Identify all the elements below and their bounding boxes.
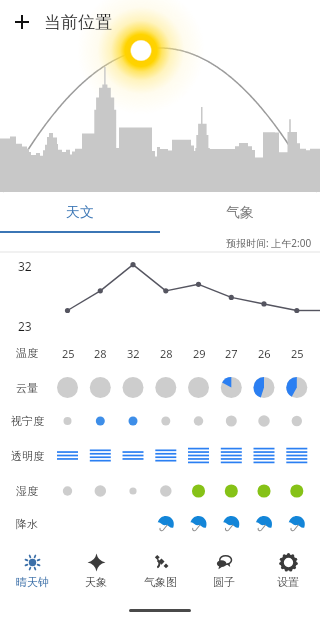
staticText: 当前位置 bbox=[44, 12, 112, 33]
staticText: 23 bbox=[18, 318, 32, 334]
staticText: 气象 bbox=[226, 204, 254, 222]
button[interactable]: 天文 bbox=[0, 193, 160, 233]
button[interactable]: 设置 bbox=[256, 541, 320, 600]
staticText: 不稳定度 bbox=[5, 550, 49, 560]
staticText: 28 bbox=[160, 346, 173, 361]
staticText: 晴天钟 bbox=[16, 575, 49, 589]
button[interactable]: 圆子 bbox=[192, 541, 256, 600]
staticText: 天象 bbox=[85, 575, 107, 589]
staticText: 透明度 bbox=[11, 449, 44, 463]
staticText: 29 bbox=[193, 346, 206, 361]
staticText: 云量 bbox=[16, 381, 38, 395]
staticText: 温度 bbox=[16, 346, 38, 360]
staticText: 32 bbox=[127, 346, 140, 361]
staticText: 27 bbox=[225, 346, 238, 361]
staticText: 气象图 bbox=[144, 575, 177, 589]
staticText: 预报时间: 上午2:00 bbox=[226, 236, 312, 250]
staticText: 32 bbox=[18, 258, 32, 274]
staticText: 28 bbox=[94, 346, 107, 361]
staticText: 25 bbox=[291, 346, 304, 361]
button[interactable]: 当前位置 bbox=[44, 0, 112, 44]
staticText: 圆子 bbox=[213, 575, 235, 589]
staticText: 25 bbox=[62, 346, 75, 361]
staticText: 天文 bbox=[66, 204, 94, 222]
staticText: 26 bbox=[258, 346, 271, 361]
button[interactable]: 晴天钟 bbox=[0, 541, 64, 600]
staticText: 降水 bbox=[16, 517, 38, 531]
button[interactable]: 天象 bbox=[64, 541, 128, 600]
staticText: 湿度 bbox=[16, 484, 38, 498]
button[interactable]: 气象图 bbox=[128, 541, 192, 600]
staticText: 设置 bbox=[277, 575, 299, 589]
button[interactable]: 气象 bbox=[160, 193, 320, 233]
button[interactable]: Add location bbox=[0, 0, 44, 44]
staticText: 视宁度 bbox=[11, 414, 44, 428]
